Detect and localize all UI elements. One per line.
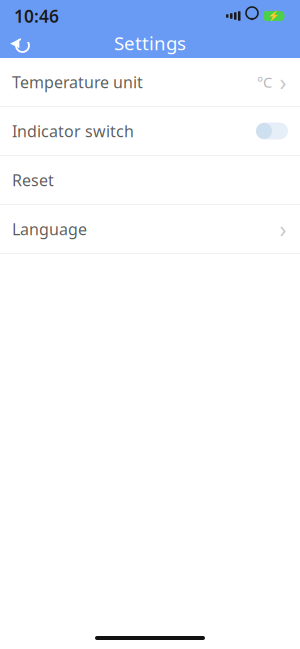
- button[interactable]: Indicator switch: [0, 107, 300, 155]
- button[interactable]: Temperature unit: [0, 58, 300, 106]
- staticText: Language: [12, 218, 87, 240]
- staticText: 10:46: [14, 4, 59, 27]
- staticText: ⚡: [267, 11, 279, 21]
- button[interactable]: Back: [0, 28, 40, 58]
- button[interactable]: Language: [0, 205, 300, 253]
- staticText: Temperature unit: [12, 71, 143, 93]
- staticText: ◀: [10, 36, 19, 49]
- staticText: Settings: [114, 31, 186, 55]
- staticText: ›: [279, 214, 286, 244]
- staticText: Indicator switch: [12, 120, 134, 142]
- staticText: Reset: [12, 169, 54, 191]
- staticText: °C: [257, 72, 272, 92]
- staticText: ›: [279, 67, 286, 97]
- button[interactable]: Reset: [0, 156, 300, 204]
